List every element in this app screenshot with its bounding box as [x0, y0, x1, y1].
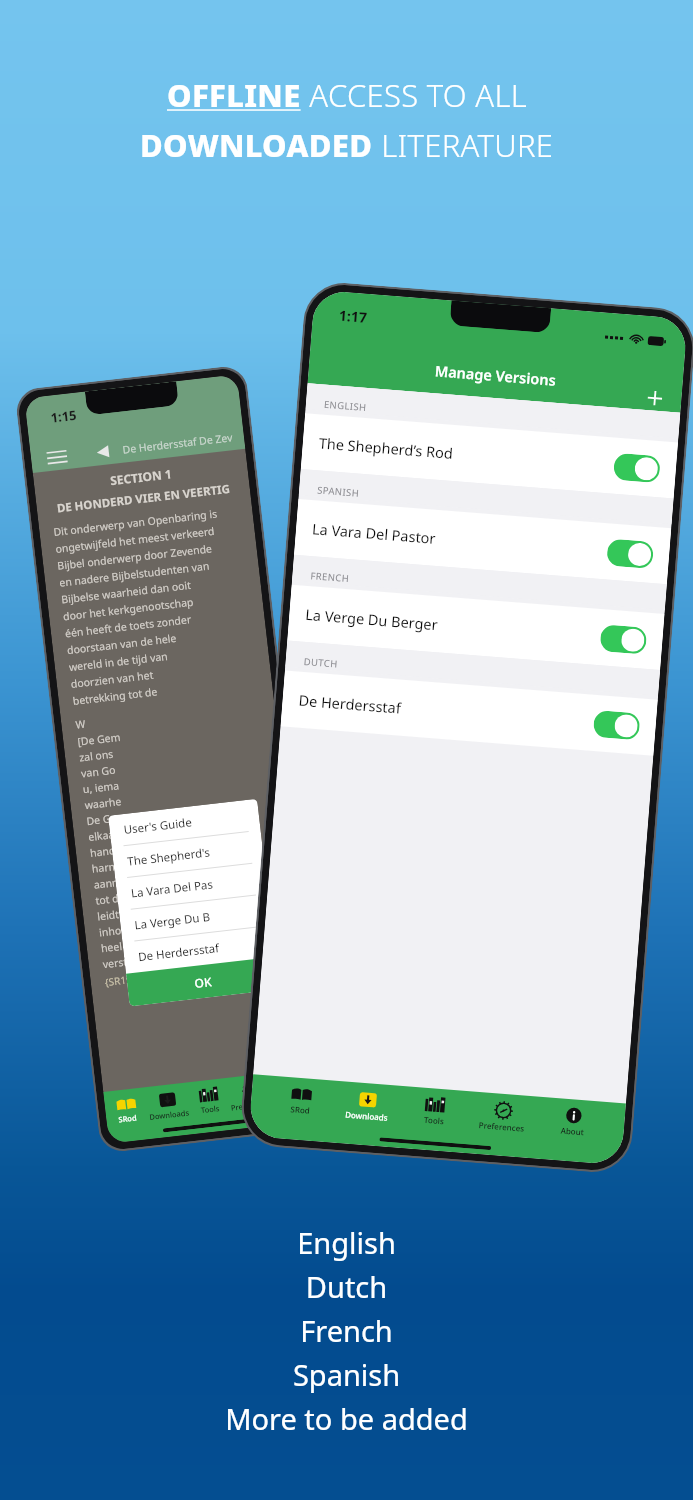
- button[interactable]: [606, 538, 654, 569]
- button[interactable]: The Shepherd’s Rod: [301, 413, 678, 498]
- button[interactable]: Downloads: [146, 1088, 190, 1124]
- button[interactable]: About: [560, 1105, 587, 1139]
- button[interactable]: SRod: [116, 1093, 138, 1126]
- staticText: French: [0, 1311, 693, 1350]
- staticText: Preferences: [478, 1119, 525, 1134]
- staticText: Spanish: [0, 1355, 693, 1394]
- staticText: Dit onderwerp van Openbaring is ongetwij…: [53, 506, 237, 708]
- staticText: ENGLISH: [323, 398, 367, 414]
- staticText: OK: [194, 973, 212, 991]
- staticText: La Verge Du Berger: [305, 604, 439, 634]
- staticText: De Herdersstaf: [298, 690, 402, 718]
- button[interactable]: La Vara Del Pas: [115, 862, 268, 910]
- button[interactable]: Tools: [198, 1084, 221, 1117]
- staticText: Tools: [424, 1114, 444, 1126]
- staticText: 1:15: [50, 406, 77, 427]
- staticText: About: [560, 1124, 585, 1137]
- staticText: SPANISH: [317, 483, 361, 500]
- button[interactable]: Preferences: [228, 1078, 274, 1115]
- staticText: OFFLINE: [167, 74, 301, 116]
- staticText: De Herdersstaf De Zev: [122, 430, 234, 457]
- staticText: DE HONDERD VIER EN VEERTIG: [50, 480, 237, 517]
- staticText: ACCESS TO ALL: [301, 74, 527, 116]
- staticText: La Vara Del Pas: [130, 876, 214, 902]
- button[interactable]: La Verge Du B: [119, 894, 271, 942]
- staticText: SECTION 1: [47, 458, 234, 495]
- staticText: Downloads: [149, 1107, 190, 1122]
- staticText: W [De Gem zal ons van Go u, iema waarhe …: [75, 708, 192, 971]
- button[interactable]: Add version: [643, 386, 666, 409]
- button[interactable]: [593, 710, 641, 740]
- staticText: The Shepherd's: [126, 844, 211, 870]
- button[interactable]: Preferences: [478, 1098, 527, 1136]
- staticText: English: [0, 1223, 693, 1262]
- staticText: DUTCH: [303, 655, 339, 671]
- staticText: The Shepherd’s Rod: [318, 432, 454, 463]
- staticText: La Verge Du B: [134, 909, 211, 933]
- button[interactable]: La Verge Du Berger: [287, 585, 664, 670]
- staticText: SRod: [118, 1112, 138, 1124]
- button[interactable]: Tools: [423, 1094, 446, 1128]
- button[interactable]: La Vara Del Pastor: [294, 499, 671, 584]
- button[interactable]: De Herdersstaf: [280, 670, 658, 756]
- staticText: {SR1:13.2}: [104, 970, 153, 989]
- staticText: De Herdersstaf: [137, 940, 221, 965]
- staticText: Preferences: [230, 1098, 274, 1113]
- button[interactable]: De Herdersstaf: [122, 926, 275, 974]
- staticText: 1:17: [338, 306, 368, 327]
- staticText: About: [285, 1093, 308, 1105]
- staticText: User's Guide: [123, 814, 193, 838]
- staticText: Manage Versions: [434, 360, 557, 390]
- button[interactable]: Downloads: [345, 1088, 390, 1125]
- button[interactable]: [613, 453, 661, 483]
- staticText: More to be added: [0, 1399, 693, 1438]
- button[interactable]: The Shepherd's: [112, 830, 264, 878]
- button[interactable]: User's Guide: [108, 799, 260, 846]
- staticText: La Vara Del Pastor: [311, 518, 437, 548]
- staticText: Downloads: [345, 1109, 389, 1123]
- button[interactable]: [599, 624, 647, 655]
- button[interactable]: Menu: [46, 449, 68, 465]
- staticText: DOWNLOADED: [140, 124, 373, 166]
- staticText: LITERATURE: [373, 124, 554, 166]
- button[interactable]: Back: [96, 445, 109, 459]
- staticText: FRENCH: [310, 569, 350, 585]
- staticText: SRod: [290, 1103, 311, 1116]
- button[interactable]: SRod: [290, 1083, 312, 1118]
- staticText: Tools: [200, 1103, 220, 1115]
- button[interactable]: About: [283, 1074, 308, 1107]
- staticText: Dutch: [0, 1267, 693, 1306]
- button[interactable]: OK: [126, 957, 279, 1006]
